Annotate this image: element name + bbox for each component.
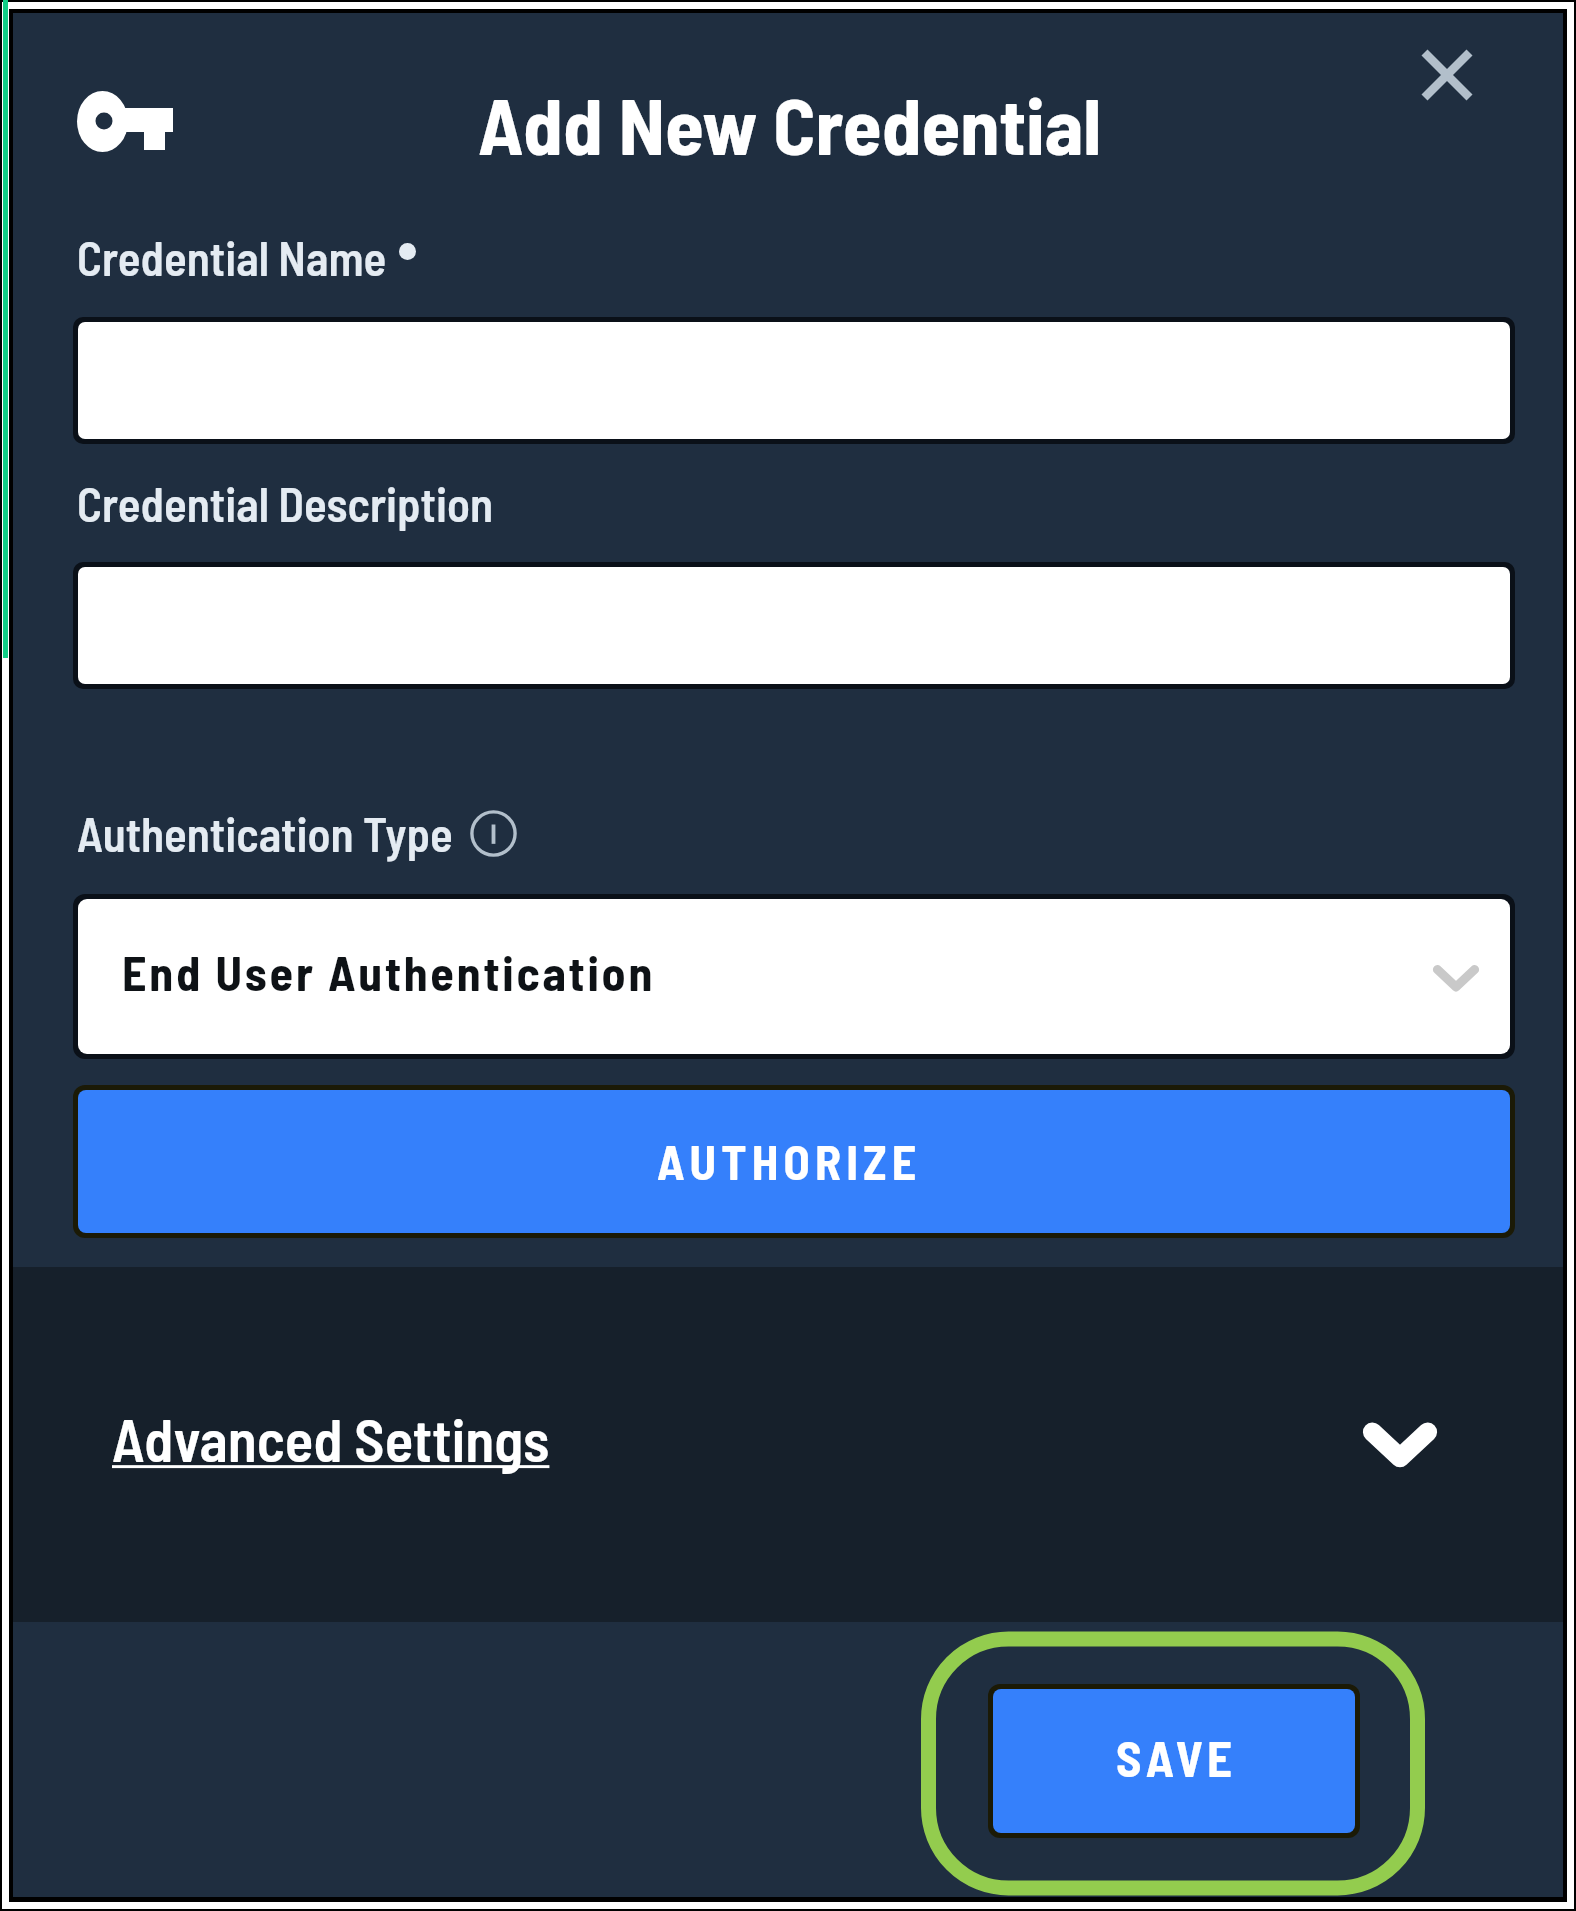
button[interactable]: End User Authentication xyxy=(78,899,1510,1054)
button[interactable] xyxy=(78,567,1510,684)
staticText: SAVE xyxy=(1116,1728,1237,1787)
staticText: Advanced Settings xyxy=(112,1403,550,1474)
staticText: Credential Description xyxy=(77,475,494,531)
staticText: Credential Name xyxy=(77,229,387,285)
button[interactable]: SAVE xyxy=(993,1689,1355,1833)
button[interactable]: AUTHORIZE xyxy=(78,1090,1510,1233)
staticText: Authentication Type xyxy=(77,805,453,861)
staticText: End User Authentication xyxy=(122,943,656,1001)
button[interactable]: Close xyxy=(1412,40,1482,110)
button[interactable]: Authentication type information xyxy=(471,811,516,856)
button[interactable] xyxy=(78,322,1510,439)
button[interactable]: Advanced Settings xyxy=(112,1392,1444,1484)
staticText: AUTHORIZE xyxy=(657,1132,922,1190)
staticText: Add New Credential xyxy=(478,76,1102,171)
button[interactable]: Expand advanced settings xyxy=(1354,1397,1446,1489)
